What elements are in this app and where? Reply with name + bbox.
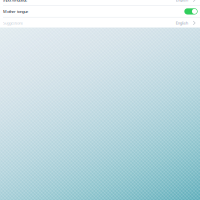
staticText: Mother tongue	[3, 9, 28, 14]
button[interactable]: Suggestions	[0, 17, 200, 28]
button[interactable]: Input language	[0, 0, 200, 5]
staticText: Suggestions	[3, 20, 23, 26]
staticText: English	[176, 20, 188, 26]
staticText: Input language	[3, 0, 27, 2]
button[interactable]: Mother tongue	[0, 6, 200, 17]
staticText: English	[176, 0, 188, 2]
